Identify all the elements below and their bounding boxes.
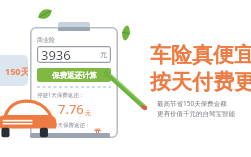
button[interactable]: 保费返还计算: [37, 68, 111, 82]
staticText: 元: [85, 109, 91, 117]
staticText: 按天付费更: [150, 69, 251, 95]
staticText: 150天: [5, 65, 28, 77]
staticText: 7.76: [58, 100, 84, 118]
other: decoration: [140, 104, 146, 110]
button[interactable]: 150天: [0, 55, 28, 86]
staticText: 更有价值千元的自驾宝智能: [157, 110, 235, 118]
staticText: 停驶150天保费返还：: [37, 121, 91, 129]
staticText: 车险真便宜: [150, 42, 251, 68]
staticText: 3936: [41, 46, 71, 63]
staticText: 保费返还计算: [52, 71, 97, 80]
staticText: 元: [94, 127, 101, 136]
staticText: 元: [100, 50, 107, 59]
staticText: 1165: [47, 129, 93, 138]
staticText: 最高节省150天保费金额: [157, 99, 227, 108]
staticText: 停驶1天保费返还：: [37, 91, 85, 99]
button[interactable]: 3936: [37, 46, 111, 63]
staticText: 商业险: [37, 36, 55, 44]
